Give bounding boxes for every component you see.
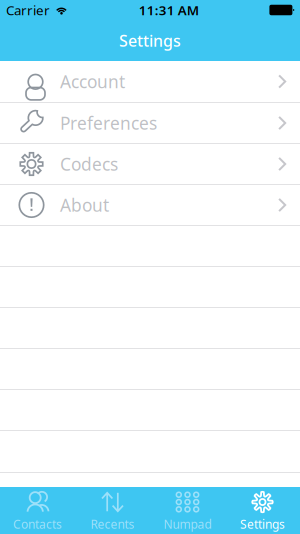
button[interactable]: Settings (225, 487, 300, 534)
staticText: Account (60, 70, 125, 93)
staticText: Settings (119, 30, 181, 51)
button[interactable]: Contacts (0, 487, 75, 534)
button[interactable]: Numpad (150, 487, 225, 534)
staticText: 11:31 AM (139, 1, 199, 19)
button[interactable]: About (0, 185, 300, 226)
staticText: Settings (240, 516, 285, 532)
staticText: Numpad (163, 516, 211, 532)
staticText: About (60, 193, 109, 216)
button[interactable]: Preferences (0, 103, 300, 144)
staticText: Codecs (60, 152, 118, 175)
button[interactable]: Account (0, 61, 300, 103)
staticText: Preferences (60, 111, 157, 134)
button[interactable]: Codecs (0, 144, 300, 185)
button[interactable]: Recents (75, 487, 150, 534)
staticText: Carrier (6, 1, 50, 19)
staticText: Recents (90, 516, 134, 532)
staticText: Contacts (13, 516, 62, 532)
